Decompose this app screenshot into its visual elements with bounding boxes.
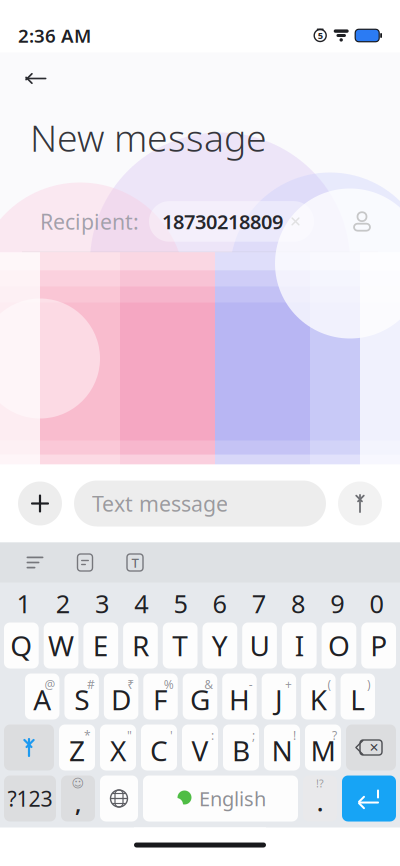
button[interactable]: Y <box>202 622 237 668</box>
staticText: @ <box>44 676 55 692</box>
button[interactable]: 6 <box>200 586 239 620</box>
staticText: New message <box>30 112 267 162</box>
staticText: !? <box>316 776 324 791</box>
staticText: N <box>271 732 292 769</box>
staticText: ' <box>170 727 173 743</box>
button[interactable]: Comma <box>61 775 95 821</box>
button[interactable]: 0 <box>357 586 396 620</box>
staticText: ( <box>328 676 332 692</box>
staticText: ? <box>332 727 337 743</box>
button[interactable]: Choose contact <box>342 201 382 241</box>
button[interactable]: Z <box>59 724 95 770</box>
button[interactable]: E <box>83 622 118 668</box>
staticText: 4 <box>134 587 148 620</box>
button[interactable]: D <box>104 673 138 719</box>
button[interactable]: C <box>141 724 177 770</box>
button[interactable]: L <box>341 673 375 719</box>
button[interactable]: H <box>222 673 257 719</box>
staticText: * <box>84 727 91 743</box>
button[interactable]: A <box>25 673 59 719</box>
button[interactable]: Period <box>303 775 337 821</box>
button[interactable]: 2 <box>43 586 82 620</box>
staticText: " <box>127 727 132 743</box>
button[interactable]: 5 <box>161 586 200 620</box>
button[interactable]: Q <box>4 622 39 668</box>
staticText: T <box>172 627 188 664</box>
button[interactable]: O <box>322 622 356 668</box>
button[interactable]: V <box>182 724 218 770</box>
button[interactable]: Text tools <box>120 547 150 577</box>
button[interactable]: 18730218809 <box>149 201 314 242</box>
staticText: U <box>250 627 270 664</box>
button[interactable]: N <box>264 724 300 770</box>
staticText: S <box>74 681 89 718</box>
staticText: X <box>110 732 126 769</box>
button[interactable]: Change language <box>100 775 138 821</box>
button[interactable]: 9 <box>318 586 357 620</box>
staticText: ! <box>293 727 296 743</box>
staticText: T <box>131 554 138 571</box>
staticText: 1 <box>17 587 31 620</box>
button[interactable]: Add attachment <box>18 481 62 525</box>
staticText: ₹ <box>127 676 134 692</box>
button[interactable]: Keyboard menu <box>20 547 50 577</box>
staticText: 18730218809 <box>162 208 283 235</box>
staticText: I <box>295 627 304 664</box>
staticText: # <box>87 676 95 692</box>
button[interactable]: S <box>64 673 99 719</box>
staticText: K <box>310 681 327 718</box>
button[interactable]: X <box>100 724 136 770</box>
button[interactable]: Text message <box>74 480 326 526</box>
staticText: G <box>190 681 210 718</box>
button[interactable]: 7 <box>239 586 278 620</box>
button[interactable]: F <box>143 673 178 719</box>
staticText: % <box>164 676 174 692</box>
button[interactable]: M <box>305 724 341 770</box>
button[interactable]: Clipboard <box>70 547 100 577</box>
button[interactable]: T <box>163 622 197 668</box>
button[interactable]: I <box>282 622 317 668</box>
button[interactable]: Shift <box>4 724 54 770</box>
button[interactable]: English <box>143 775 298 821</box>
staticText: English <box>199 785 266 812</box>
staticText: V <box>191 732 208 769</box>
staticText: ; <box>252 727 255 743</box>
button[interactable]: Back <box>14 58 58 98</box>
staticText: - <box>249 676 253 692</box>
button[interactable]: U <box>242 622 277 668</box>
staticText: Text message <box>92 489 228 518</box>
button[interactable]: Return <box>342 775 396 821</box>
staticText: 8 <box>291 587 305 620</box>
button[interactable]: P <box>361 622 396 668</box>
staticText: 2:36 AM <box>18 23 91 48</box>
staticText: W <box>48 627 74 664</box>
staticText: 2 <box>56 587 70 620</box>
button[interactable]: R <box>123 622 158 668</box>
button[interactable]: J <box>262 673 296 719</box>
staticText: Y <box>212 627 228 664</box>
staticText: F <box>153 681 168 718</box>
staticText: Recipient: <box>40 207 139 236</box>
staticText: , <box>75 788 81 818</box>
button[interactable]: K <box>301 673 335 719</box>
staticText: . <box>317 787 323 818</box>
staticText: ☺ <box>71 777 84 790</box>
button[interactable]: W <box>44 622 78 668</box>
button[interactable]: ?123 <box>4 775 56 821</box>
button[interactable]: 4 <box>122 586 161 620</box>
button[interactable]: 3 <box>82 586 122 620</box>
button[interactable]: 8 <box>278 586 318 620</box>
button[interactable]: G <box>183 673 217 719</box>
button[interactable]: 1 <box>4 586 43 620</box>
button[interactable]: B <box>223 724 259 770</box>
staticText: ✕ <box>369 741 379 754</box>
staticText: Z <box>69 732 85 769</box>
staticText: M <box>310 732 335 769</box>
staticText: L <box>350 681 365 718</box>
staticText: P <box>370 627 387 664</box>
staticText: A <box>33 681 51 718</box>
staticText: H <box>229 681 250 718</box>
button[interactable]: Backspace <box>346 724 396 770</box>
staticText: 7 <box>252 587 266 620</box>
button[interactable]: Send <box>338 481 382 525</box>
